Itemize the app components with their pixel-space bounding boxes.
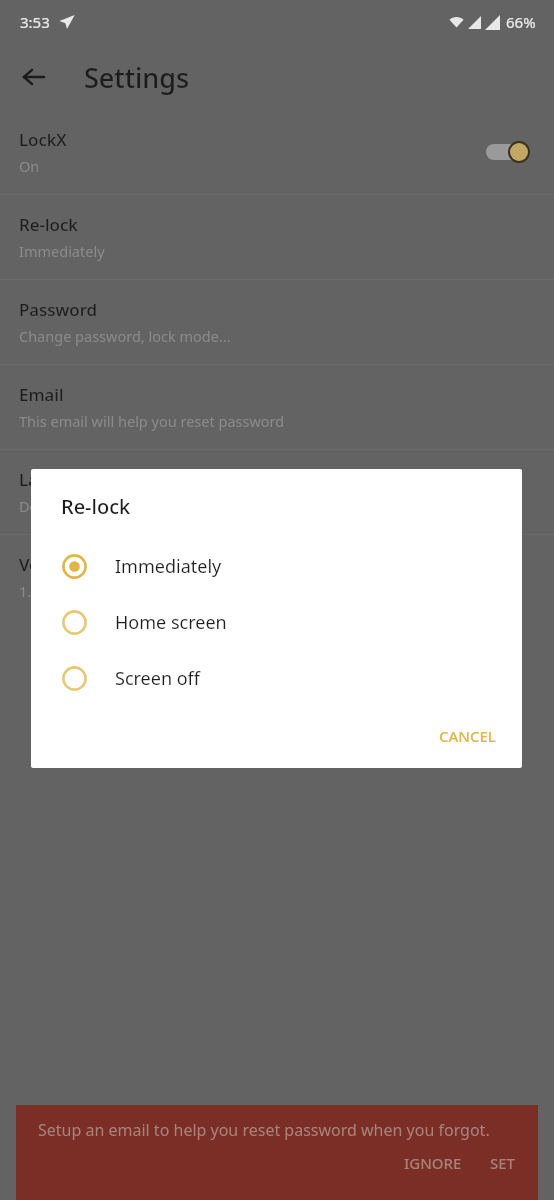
button[interactable]: Home screen (31, 594, 522, 650)
staticText: 1.0.4 (19, 581, 52, 601)
staticText: CANCEL (439, 726, 496, 746)
staticText: Re-lock (19, 213, 78, 236)
button[interactable]: Immediately (31, 538, 522, 594)
button[interactable]: Version (0, 535, 554, 619)
button[interactable]: Back (10, 53, 58, 101)
staticText: Home screen (115, 610, 227, 635)
staticText: Immediately (19, 241, 105, 261)
staticText: 66% (506, 12, 536, 32)
staticText: Version (19, 553, 80, 576)
staticText: Screen off (115, 666, 200, 691)
button[interactable]: Screen off (31, 650, 522, 706)
staticText: Settings (84, 59, 190, 96)
button[interactable]: Email (0, 365, 554, 449)
staticText: This email will help you reset password (19, 411, 285, 431)
button[interactable]: LockX (0, 110, 554, 194)
button[interactable]: Re-lock (0, 195, 554, 279)
staticText: Re-lock (61, 493, 131, 520)
staticText: Setup an email to help you reset passwor… (38, 1119, 490, 1141)
staticText: Email (19, 383, 64, 406)
button[interactable]: IGNORE (396, 1147, 470, 1179)
staticText: Default (19, 496, 69, 516)
staticText: Change password, lock mode... (19, 326, 231, 346)
staticText: 3:53 (20, 12, 50, 32)
button[interactable]: Toggle LockX (482, 135, 542, 169)
button[interactable]: CANCEL (425, 716, 510, 756)
staticText: Immediately (115, 554, 222, 579)
button[interactable]: Language (0, 450, 554, 534)
staticText: Language (19, 468, 100, 491)
button[interactable]: Password (0, 280, 554, 364)
staticText: Password (19, 298, 98, 321)
staticText: LockX (19, 128, 67, 151)
staticText: On (19, 156, 40, 176)
staticText: SET (490, 1153, 516, 1173)
button[interactable]: SET (482, 1147, 524, 1179)
staticText: IGNORE (404, 1153, 462, 1173)
